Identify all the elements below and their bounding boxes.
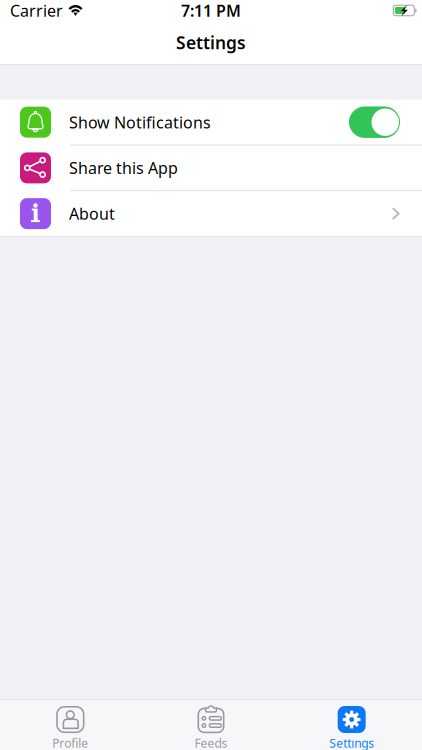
button[interactable]: Share this App [0,145,422,190]
staticText: Feeds [194,735,227,750]
staticText: Show Notifications [69,112,211,133]
staticText: Share this App [69,157,178,178]
staticText: 7:11 PM [181,0,241,21]
staticText: About [69,203,115,224]
button[interactable]: Feeds [141,699,281,750]
button[interactable]: Profile [0,699,141,750]
button[interactable]: Settings [281,699,422,750]
staticText: Settings [176,31,246,54]
staticText: Settings [329,735,374,750]
staticText: Carrier [10,0,63,21]
button[interactable]: Show Notifications [0,100,422,145]
button[interactable]: About [0,191,422,236]
staticText: Profile [52,735,88,750]
